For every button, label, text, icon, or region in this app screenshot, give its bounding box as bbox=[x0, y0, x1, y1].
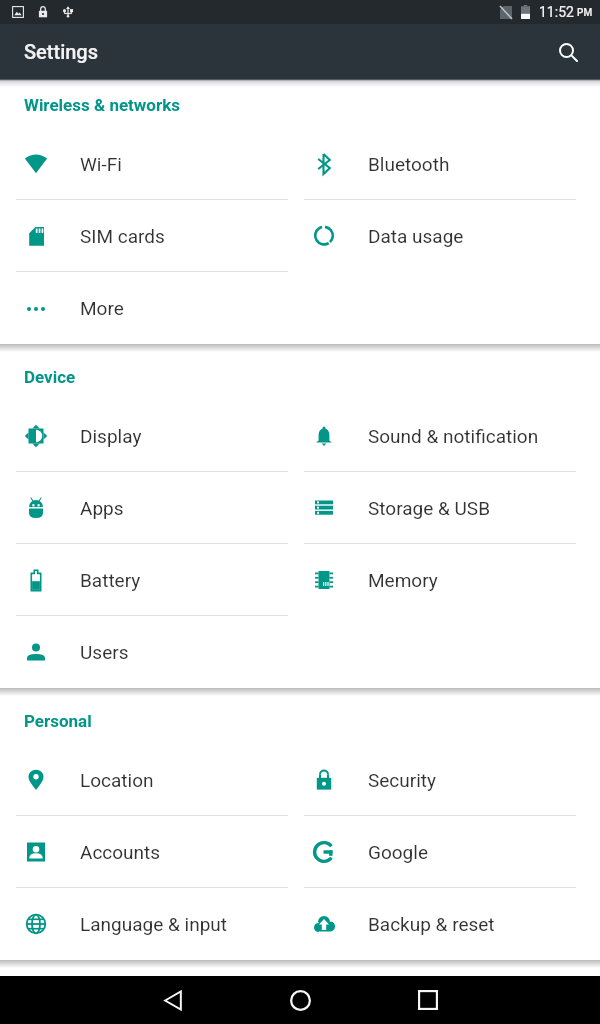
button[interactable]: Display bbox=[0, 400, 288, 472]
button[interactable]: Users bbox=[0, 616, 288, 688]
button[interactable]: Google bbox=[288, 816, 600, 888]
button[interactable]: Battery bbox=[0, 544, 288, 616]
button[interactable]: Bluetooth bbox=[288, 128, 600, 200]
button[interactable]: Language & input bbox=[0, 888, 288, 960]
button[interactable]: Accounts bbox=[0, 816, 288, 888]
staticText: Apps bbox=[80, 497, 124, 519]
button[interactable]: SIM cards bbox=[0, 200, 288, 272]
button[interactable]: Data usage bbox=[288, 200, 600, 272]
staticText: Accounts bbox=[80, 841, 161, 863]
button[interactable]: Recents bbox=[404, 976, 452, 1024]
button[interactable]: Security bbox=[288, 744, 600, 816]
staticText: Battery bbox=[80, 569, 141, 591]
button[interactable]: Storage & USB bbox=[288, 472, 600, 544]
button[interactable]: Location bbox=[0, 744, 288, 816]
button[interactable]: Home bbox=[276, 976, 324, 1024]
staticText: Security bbox=[368, 769, 437, 791]
staticText: Sound & notification bbox=[368, 425, 539, 447]
button[interactable]: Search bbox=[544, 28, 592, 76]
staticText: Settings bbox=[24, 40, 99, 63]
staticText: PM bbox=[577, 7, 593, 19]
staticText: SIM cards bbox=[80, 225, 165, 247]
staticText: Location bbox=[80, 769, 154, 791]
staticText: Users bbox=[80, 641, 129, 663]
staticText: More bbox=[80, 297, 124, 319]
button[interactable]: Backup & reset bbox=[288, 888, 600, 960]
button[interactable]: Wi-Fi bbox=[0, 128, 288, 200]
button[interactable]: Sound & notification bbox=[288, 400, 600, 472]
staticText: Wi-Fi bbox=[80, 153, 122, 175]
staticText: 11:52 bbox=[539, 4, 574, 20]
staticText: Language & input bbox=[80, 913, 227, 935]
staticText: Google bbox=[368, 841, 428, 863]
staticText: Backup & reset bbox=[368, 913, 495, 935]
staticText: Personal bbox=[24, 711, 92, 731]
button[interactable]: Back bbox=[149, 976, 197, 1024]
staticText: Display bbox=[80, 425, 142, 447]
staticText: Bluetooth bbox=[368, 153, 450, 175]
staticText: Device bbox=[24, 367, 76, 387]
button[interactable]: More bbox=[0, 272, 288, 344]
staticText: Data usage bbox=[368, 225, 464, 247]
staticText: Storage & USB bbox=[368, 497, 490, 519]
staticText: Memory bbox=[368, 569, 438, 591]
button[interactable]: Apps bbox=[0, 472, 288, 544]
button[interactable]: Memory bbox=[288, 544, 600, 616]
staticText: Wireless & networks bbox=[24, 95, 180, 115]
